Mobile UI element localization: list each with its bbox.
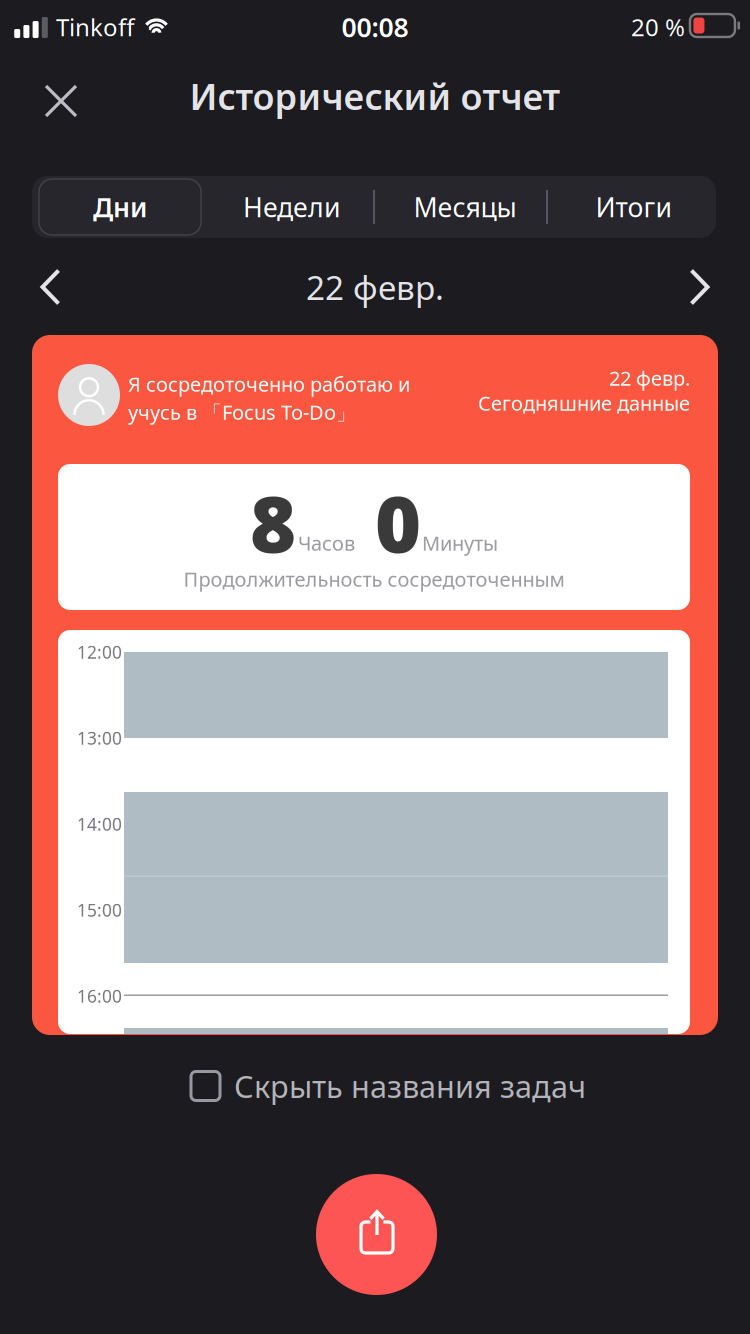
staticText: Месяцы: [413, 189, 516, 225]
staticText: учусь в 「Focus To-Do」: [128, 399, 356, 425]
staticText: Продолжительность сосредоточенным: [183, 566, 564, 592]
button[interactable]: Share: [316, 1174, 438, 1296]
button[interactable]: Previous day: [10, 258, 90, 316]
staticText: 8: [250, 470, 296, 574]
staticText: Я сосредоточенно работаю и: [128, 371, 410, 397]
staticText: 20 %: [631, 11, 685, 43]
staticText: 12:00: [77, 640, 122, 663]
button[interactable]: Скрыть названия задач: [191, 1060, 611, 1112]
staticText: Скрыть названия задач: [234, 1066, 586, 1106]
button[interactable]: Месяцы: [379, 176, 551, 238]
staticText: 13:00: [77, 726, 122, 749]
staticText: Tinkoff: [56, 11, 135, 43]
staticText: Итоги: [595, 189, 672, 225]
staticText: Недели: [243, 189, 341, 225]
button[interactable]: Close: [28, 68, 94, 134]
staticText: 16:00: [77, 984, 122, 1007]
button[interactable]: Итоги: [548, 176, 720, 238]
staticText: Исторический отчет: [189, 72, 560, 120]
staticText: 14:00: [77, 812, 122, 835]
staticText: 22 февр.: [609, 365, 690, 391]
staticText: 15:00: [77, 898, 122, 921]
staticText: Часов: [298, 530, 355, 556]
staticText: Дни: [93, 189, 147, 225]
staticText: Сегодняшние данные: [478, 390, 690, 416]
button[interactable]: Дни: [35, 176, 205, 238]
staticText: 00:08: [341, 9, 408, 45]
button[interactable]: Недели: [206, 176, 378, 238]
staticText: Минуты: [422, 530, 498, 556]
staticText: 0: [375, 470, 421, 574]
staticText: 22 февр.: [306, 265, 444, 309]
button[interactable]: Next day: [660, 258, 740, 316]
